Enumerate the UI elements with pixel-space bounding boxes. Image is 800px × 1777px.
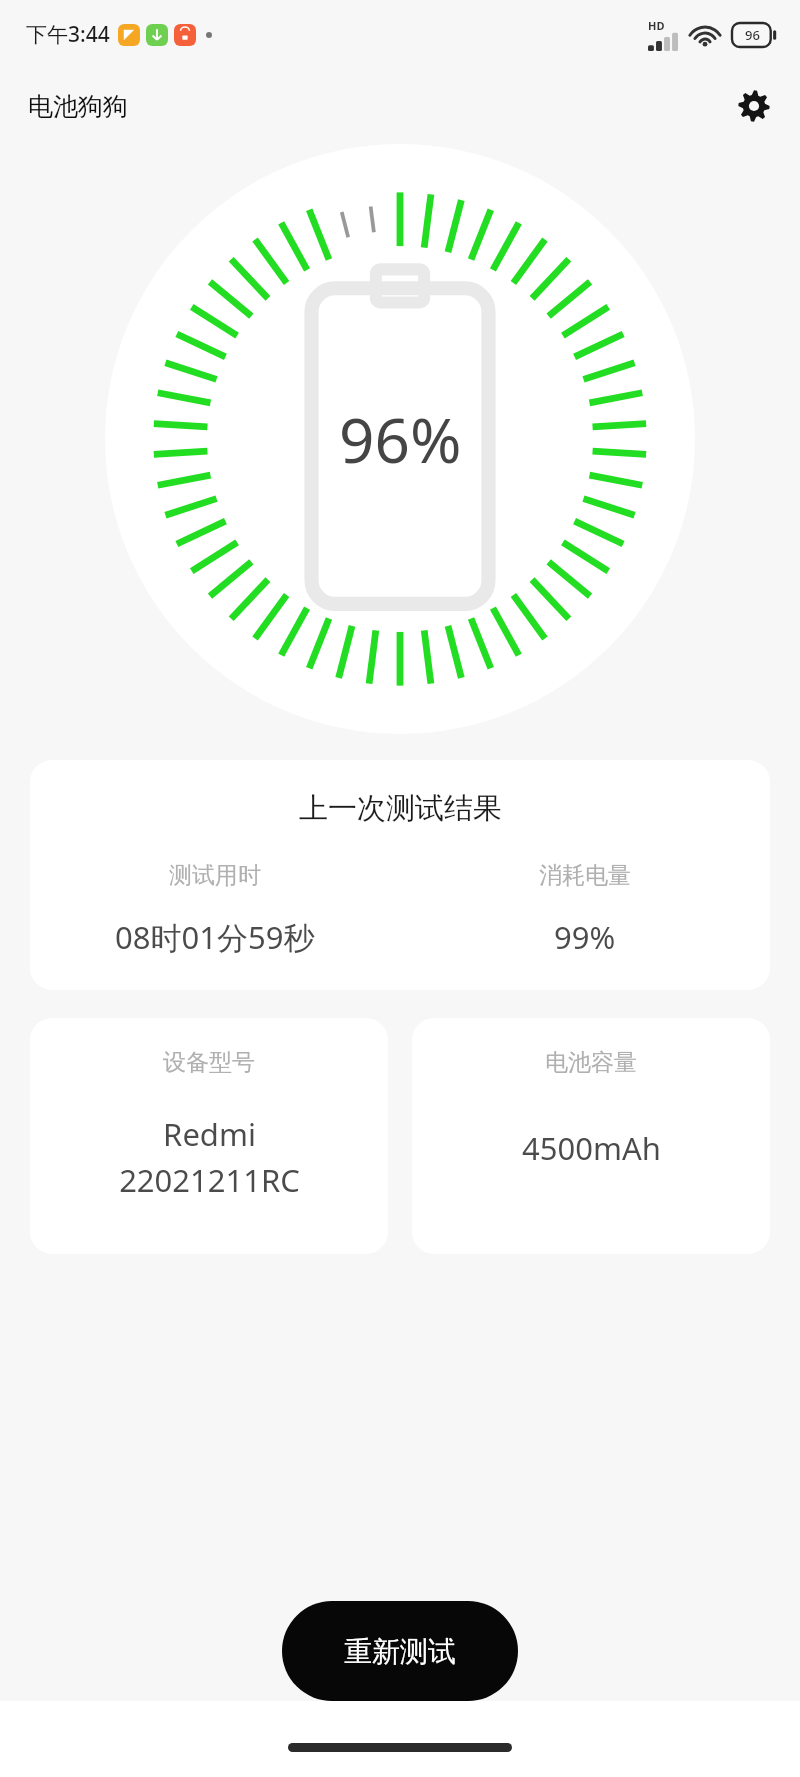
button[interactable]: 重新测试 <box>282 1601 518 1701</box>
staticText: 测试用时 <box>169 861 261 890</box>
staticText: 4500mAh <box>522 1127 661 1169</box>
button[interactable]: Settings <box>730 82 778 130</box>
button[interactable]: 设备型号 <box>30 1018 388 1254</box>
staticText: 电池狗狗 <box>28 91 128 122</box>
staticText: Redmi <box>163 1113 256 1155</box>
staticText: HD <box>648 18 665 33</box>
staticText: 上一次测试结果 <box>299 790 502 827</box>
staticText: 设备型号 <box>163 1048 255 1077</box>
staticText: 08时01分59秒 <box>115 916 315 958</box>
staticText: 96 <box>745 26 760 44</box>
staticText: 99% <box>554 916 616 958</box>
button[interactable]: 电池容量 <box>412 1018 770 1254</box>
staticText: 重新测试 <box>344 1634 456 1669</box>
staticText: 22021211RC <box>119 1159 300 1201</box>
staticText: 电池容量 <box>545 1048 637 1077</box>
staticText: 96% <box>339 397 462 481</box>
staticText: 下午3:44 <box>26 20 110 49</box>
staticText: 消耗电量 <box>539 861 631 890</box>
button[interactable]: 上一次测试结果 <box>30 760 770 990</box>
